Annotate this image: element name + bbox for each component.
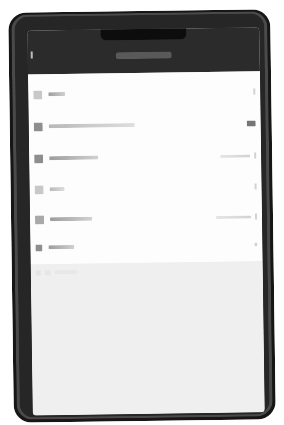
- button[interactable]: Wi-Fi: [28, 75, 260, 110]
- other: Battery: [35, 185, 44, 194]
- button[interactable]: Apps and notifications: [29, 139, 261, 174]
- button[interactable]: Search: [116, 52, 172, 59]
- button[interactable]: Battery: [29, 171, 262, 204]
- button[interactable]: Display settings: [30, 201, 262, 234]
- other: Sound: [35, 244, 42, 251]
- other: Connected device: [34, 122, 43, 131]
- other: Wi-Fi: [33, 90, 42, 99]
- button[interactable]: Sound: [30, 231, 262, 260]
- button[interactable]: Connected device: [28, 107, 261, 142]
- other: Display settings: [35, 215, 44, 224]
- other: Apps and notifications: [34, 154, 43, 163]
